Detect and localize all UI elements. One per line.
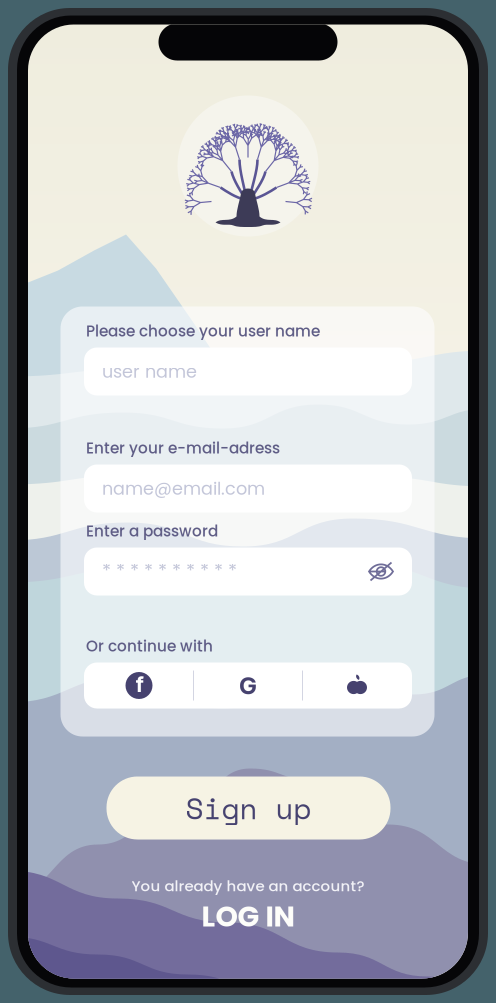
- staticText: LOG IN: [201, 896, 294, 936]
- staticText: Or continue with: [86, 635, 213, 657]
- button[interactable]: Continue with Facebook: [85, 662, 193, 708]
- staticText: Sign up: [185, 786, 311, 830]
- staticText: You already have an account?: [131, 875, 364, 896]
- staticText: Enter a password: [86, 520, 218, 542]
- staticText: Enter your e-mail-adress: [86, 437, 280, 459]
- button[interactable]: user name: [84, 347, 412, 395]
- staticText: * * * * * * * * * *: [102, 558, 237, 584]
- button[interactable]: name@email.com: [84, 464, 412, 512]
- staticText: Please choose your user name: [86, 320, 320, 342]
- staticText: G: [239, 671, 257, 700]
- staticText: name@email.com: [102, 476, 265, 501]
- staticText: f: [135, 672, 143, 697]
- staticText: user name: [102, 359, 197, 384]
- button[interactable]: Continue with Google: [194, 662, 302, 708]
- button[interactable]: * * * * * * * * * *: [84, 547, 412, 595]
- button[interactable]: Sign up: [106, 776, 390, 839]
- button[interactable]: Continue with Apple: [303, 662, 411, 708]
- button[interactable]: LOG IN: [168, 898, 328, 934]
